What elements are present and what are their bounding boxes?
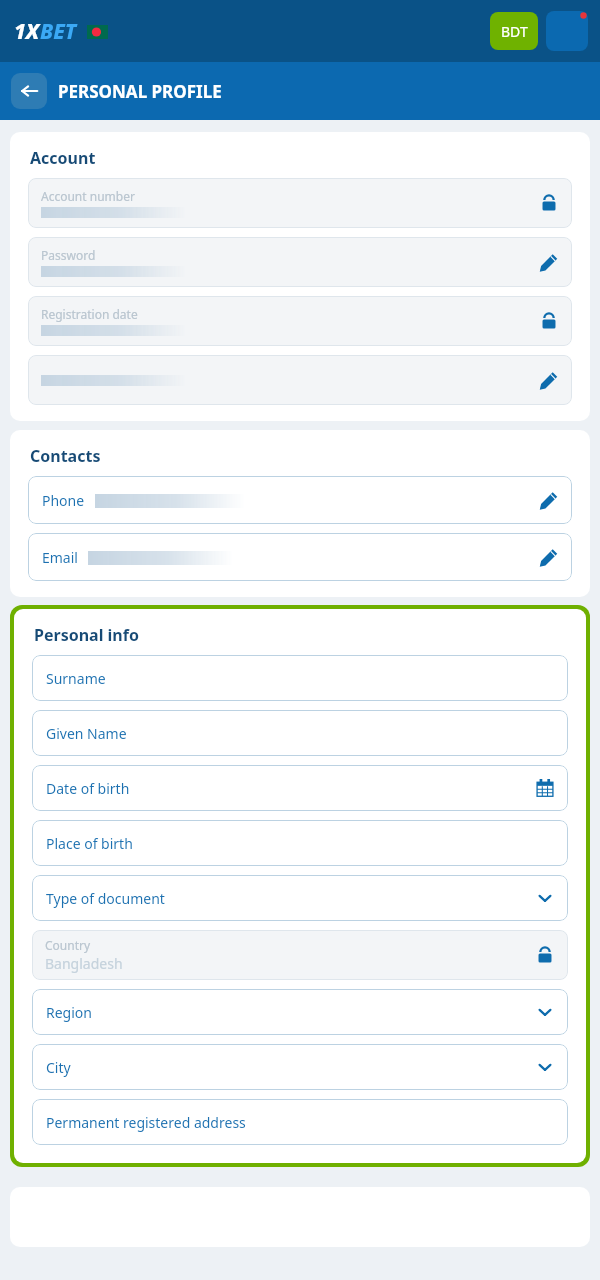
button[interactable]: Registration date — [28, 296, 572, 346]
other: Edit — [539, 491, 558, 510]
other: Edit — [539, 253, 558, 272]
button[interactable]: Date of birth — [32, 765, 568, 811]
staticText: 1X — [14, 17, 40, 46]
button[interactable]: City — [32, 1044, 568, 1090]
staticText: Email — [42, 548, 78, 567]
button[interactable]: Type of document — [32, 875, 568, 921]
staticText: Type of document — [46, 889, 165, 908]
button[interactable]: Password — [28, 237, 572, 287]
button[interactable]: Country — [32, 930, 568, 980]
staticText: Permanent registered address — [46, 1113, 246, 1132]
staticText: Date of birth — [46, 779, 130, 798]
staticText: Region — [46, 1003, 92, 1022]
button[interactable]: Surname — [32, 655, 568, 701]
other: Edit — [539, 548, 558, 567]
other: Open list — [536, 1058, 554, 1076]
button[interactable]: Given Name — [32, 710, 568, 756]
staticText: Country — [45, 937, 91, 953]
button[interactable]: Notifications — [546, 11, 588, 51]
button[interactable]: Phone — [28, 476, 572, 524]
button[interactable]: Place of birth — [32, 820, 568, 866]
staticText: City — [46, 1058, 71, 1077]
staticText: Bangladesh — [45, 954, 123, 973]
button[interactable]: Region — [32, 989, 568, 1035]
staticText: Account number — [41, 188, 135, 204]
button[interactable]: Permanent registered address — [32, 1099, 568, 1145]
staticText: Registration date — [41, 306, 138, 322]
other: Locked — [540, 194, 558, 212]
button[interactable]: Account number — [28, 178, 572, 228]
other: Pick date — [536, 779, 554, 797]
staticText: Password — [41, 247, 96, 263]
staticText: BDT — [501, 22, 528, 41]
button[interactable]: Back — [11, 73, 47, 109]
staticText: Account — [30, 147, 96, 169]
other: Edit — [539, 371, 558, 390]
button[interactable]: BDT — [490, 12, 538, 50]
staticText: Given Name — [46, 724, 127, 743]
button[interactable]: Edit — [28, 355, 572, 405]
other: Open list — [536, 889, 554, 907]
staticText: Contacts — [30, 445, 101, 467]
staticText: Personal info — [34, 624, 139, 646]
other: Open list — [536, 1003, 554, 1021]
staticText: Surname — [46, 669, 106, 688]
other: Locked — [536, 946, 554, 964]
other: Locked — [540, 312, 558, 330]
staticText: BET — [40, 17, 77, 46]
staticText: Place of birth — [46, 834, 133, 853]
staticText: Phone — [42, 491, 85, 510]
staticText: PERSONAL PROFILE — [58, 80, 222, 103]
button[interactable]: Email — [28, 533, 572, 581]
